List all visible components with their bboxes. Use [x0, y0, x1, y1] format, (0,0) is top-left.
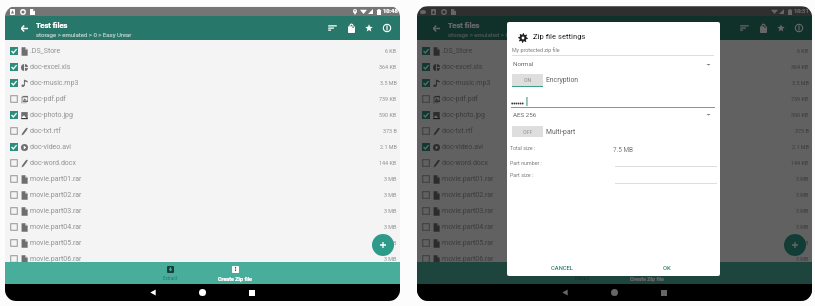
button[interactable]: movie.part04.rar	[417, 219, 812, 235]
staticText: 3 MB	[384, 208, 397, 214]
button[interactable]: doc-word.docx	[5, 155, 400, 171]
button[interactable]: doc-txt.rtf	[417, 123, 812, 139]
button[interactable]: doc-music.mp3	[417, 75, 812, 91]
staticText: doc-video.avi	[30, 143, 71, 151]
staticText: .DS_Store	[30, 47, 61, 55]
button[interactable]: Extract	[562, 262, 602, 284]
staticText: Zip file settings	[533, 32, 586, 41]
button[interactable]: Back	[137, 284, 169, 301]
staticText: 373 B	[795, 128, 809, 134]
staticText: 373 B	[383, 128, 397, 134]
staticText: doc-music.mp3	[30, 79, 79, 87]
staticText: Total size :	[510, 145, 536, 151]
button[interactable]: .DS_Store	[5, 43, 400, 59]
staticText: 364 KB	[379, 64, 397, 70]
staticText: Test files	[448, 21, 480, 30]
staticText: Create Zip file	[630, 276, 665, 282]
button[interactable]: movie.part05.rar	[417, 235, 812, 251]
button[interactable]: movie.part02.rar	[417, 187, 812, 203]
staticText: 6 KB	[385, 48, 397, 54]
staticText: storage > emulated > 0 > Easy Unrar	[36, 31, 132, 38]
staticText: storage > emulated > 0 > Easy Unrar	[448, 31, 544, 38]
button[interactable]: Back	[13, 16, 35, 40]
button[interactable]: movie.part01.rar	[417, 171, 812, 187]
button[interactable]: doc-video.avi	[5, 139, 400, 155]
staticText: movie.part03.rar	[442, 207, 494, 215]
staticText: 2.1 MB	[792, 144, 809, 150]
staticText: doc-photo.jpg	[30, 111, 73, 119]
staticText: ON	[524, 77, 532, 83]
button[interactable]: Extract	[150, 262, 190, 284]
button[interactable]: doc-photo.jpg	[5, 107, 400, 123]
button[interactable]: Home	[186, 284, 218, 301]
staticText: doc-photo.jpg	[442, 111, 485, 119]
staticText: Encryption	[546, 76, 579, 84]
staticText: doc-video.avi	[442, 143, 483, 151]
staticText: .DS_Store	[442, 47, 473, 55]
button[interactable]: doc-pdf.pdf	[417, 91, 812, 107]
button[interactable]: Create Zip file	[622, 262, 673, 284]
button[interactable]: .DS_Store	[417, 43, 812, 59]
staticText: movie.part06.rar	[442, 255, 494, 263]
button[interactable]: CANCEL	[548, 261, 575, 275]
button[interactable]: doc-word.docx	[417, 155, 812, 171]
staticText: 6 KB	[797, 48, 809, 54]
button[interactable]: movie.part06.rar	[417, 251, 812, 267]
button[interactable]: Recents	[236, 284, 268, 301]
staticText: movie.part06.rar	[30, 255, 82, 263]
button[interactable]: movie.part03.rar	[5, 203, 400, 219]
staticText: movie.part01.rar	[30, 175, 82, 183]
button[interactable]: doc-txt.rtf	[5, 123, 400, 139]
staticText: doc-txt.rtf	[30, 127, 61, 135]
button[interactable]: doc-excel.xls	[417, 59, 812, 75]
staticText: Part size :	[510, 172, 534, 178]
button[interactable]: Lock	[342, 16, 360, 40]
button[interactable]: Info	[790, 16, 808, 40]
button[interactable]: Lock	[754, 16, 772, 40]
staticText: doc-excel.xls	[30, 63, 71, 71]
button[interactable]: Back	[425, 16, 447, 40]
button[interactable]: Sort	[735, 16, 753, 40]
button[interactable]: Create Zip file	[210, 262, 261, 284]
button[interactable]: ON	[512, 74, 543, 86]
staticText: OFF	[523, 129, 533, 135]
button[interactable]: Add	[784, 234, 806, 256]
button[interactable]: Add	[372, 234, 394, 256]
button[interactable]: Recents	[648, 284, 680, 301]
button[interactable]: doc-music.mp3	[5, 75, 400, 91]
button[interactable]: OK	[657, 261, 676, 275]
staticText: 590 KB	[791, 112, 809, 118]
staticText: Normal	[513, 60, 534, 67]
staticText: 3 MB	[796, 240, 809, 246]
staticText: 590 KB	[379, 112, 397, 118]
button[interactable]: Sort	[323, 16, 341, 40]
staticText: 3 MB	[796, 256, 809, 262]
button[interactable]: doc-pdf.pdf	[5, 91, 400, 107]
staticText: 3 MB	[384, 176, 397, 182]
staticText: 739 KB	[379, 96, 397, 102]
staticText: doc-pdf.pdf	[442, 95, 479, 103]
button[interactable]: Favorite	[360, 16, 378, 40]
button[interactable]: movie.part06.rar	[5, 251, 400, 267]
staticText: Extract	[575, 276, 589, 281]
button[interactable]: OFF	[512, 126, 543, 137]
button[interactable]: doc-excel.xls	[5, 59, 400, 75]
button[interactable]: doc-video.avi	[417, 139, 812, 155]
staticText: doc-pdf.pdf	[30, 95, 67, 103]
staticText: AES 256	[513, 111, 537, 118]
staticText: My protected zip file	[512, 47, 560, 53]
button[interactable]: Info	[378, 16, 396, 40]
button[interactable]: Home	[598, 284, 630, 301]
button[interactable]: movie.part01.rar	[5, 171, 400, 187]
button[interactable]: Back	[549, 284, 581, 301]
button[interactable]: doc-photo.jpg	[417, 107, 812, 123]
button[interactable]: Favorite	[772, 16, 790, 40]
button[interactable]: movie.part02.rar	[5, 187, 400, 203]
staticText: doc-txt.rtf	[442, 127, 473, 135]
button[interactable]: movie.part03.rar	[417, 203, 812, 219]
staticText: doc-excel.xls	[442, 63, 483, 71]
staticText: Part number :	[510, 160, 542, 166]
button[interactable]: movie.part04.rar	[5, 219, 400, 235]
staticText: movie.part05.rar	[442, 239, 494, 247]
button[interactable]: movie.part05.rar	[5, 235, 400, 251]
